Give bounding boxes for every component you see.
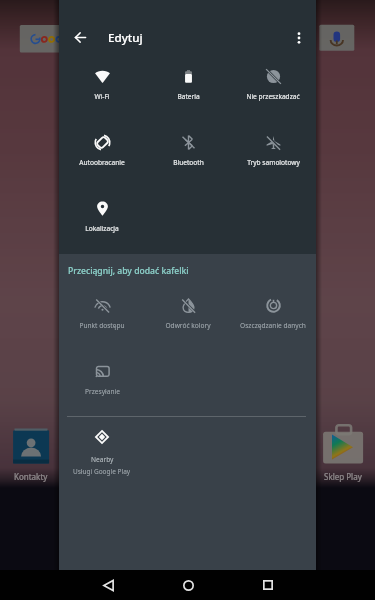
- button[interactable]: Wi-Fi: [59, 62, 145, 120]
- button[interactable]: Sklep Play: [317, 470, 369, 482]
- button[interactable]: Tryb samolotowy: [230, 128, 316, 186]
- staticText: Bluetooth: [173, 158, 204, 167]
- button[interactable]: Nie przeszkadzać: [230, 62, 316, 120]
- button[interactable]: Odwróć kolory: [145, 291, 231, 349]
- button[interactable]: Autoobracanie: [59, 128, 145, 186]
- staticText: Przeciągnij, aby dodać kafelki: [68, 265, 189, 277]
- staticText: Punkt dostępu: [79, 321, 125, 330]
- staticText: Oszczędzanie danych: [240, 321, 306, 330]
- staticText: Przesyłanie: [85, 387, 120, 396]
- staticText: Lokalizacja: [85, 224, 119, 233]
- button[interactable]: Lokalizacja: [59, 194, 145, 252]
- button[interactable]: Wstecz: [57, 14, 103, 60]
- staticText: Kontakty: [14, 471, 48, 482]
- button[interactable]: Edytuj: [103, 15, 173, 61]
- button[interactable]: Przeciągnij, aby dodać kafelki: [63, 261, 193, 281]
- staticText: Usługi Google Play: [73, 467, 131, 476]
- staticText: Bateria: [177, 92, 200, 101]
- button[interactable]: Oszczędzanie danych: [230, 291, 316, 349]
- staticText: Odwróć kolory: [165, 321, 211, 330]
- button[interactable]: Punkt dostępu: [59, 291, 145, 349]
- button[interactable]: Przesyłanie: [59, 357, 145, 415]
- staticText: Autoobracanie: [79, 158, 125, 167]
- staticText: Wi-Fi: [94, 92, 110, 101]
- button[interactable]: Nearby: [59, 423, 144, 477]
- staticText: Nearby: [91, 455, 114, 464]
- button[interactable]: Ekran główny: [164, 570, 212, 600]
- button[interactable]: Wstecz: [84, 570, 132, 600]
- button[interactable]: Kontakty: [5, 470, 57, 482]
- button[interactable]: Ostatnie aplikacje: [244, 570, 292, 600]
- button[interactable]: Bateria: [145, 62, 231, 120]
- staticText: Nie przeszkadzać: [246, 92, 300, 101]
- staticText: Tryb samolotowy: [247, 158, 300, 167]
- button[interactable]: Bluetooth: [145, 128, 231, 186]
- staticText: Edytuj: [108, 30, 143, 46]
- staticText: Sklep Play: [324, 471, 362, 482]
- button[interactable]: Więcej opcji: [276, 15, 322, 61]
